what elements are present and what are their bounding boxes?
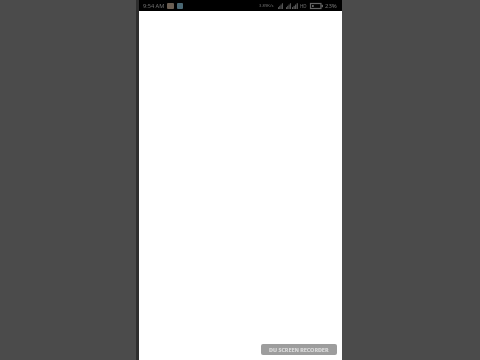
other: Mobile signal SIM 1 [278,3,283,9]
other: Battery 23 percent [310,3,323,9]
other: Notification [177,3,183,9]
other: Notification [167,3,174,9]
other: Mobile signal SIM 2 [286,3,291,9]
button[interactable] [139,11,342,360]
staticText: 9:54 AM [143,2,165,10]
staticText: 3.89K/s [259,3,274,9]
other: Wi-Fi signal [292,3,298,9]
button[interactable]: DU SCREEN RECORDER [261,344,337,355]
staticText: HD [300,3,307,9]
staticText: 23% [325,2,337,10]
staticText: DU SCREEN RECORDER [269,346,329,353]
